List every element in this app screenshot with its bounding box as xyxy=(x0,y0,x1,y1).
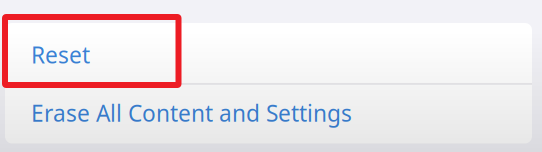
button[interactable]: Reset xyxy=(5,23,532,83)
staticText: Erase All Content and Settings xyxy=(31,98,352,128)
staticText: Reset xyxy=(31,40,90,70)
button[interactable]: Erase All Content and Settings xyxy=(5,85,532,143)
